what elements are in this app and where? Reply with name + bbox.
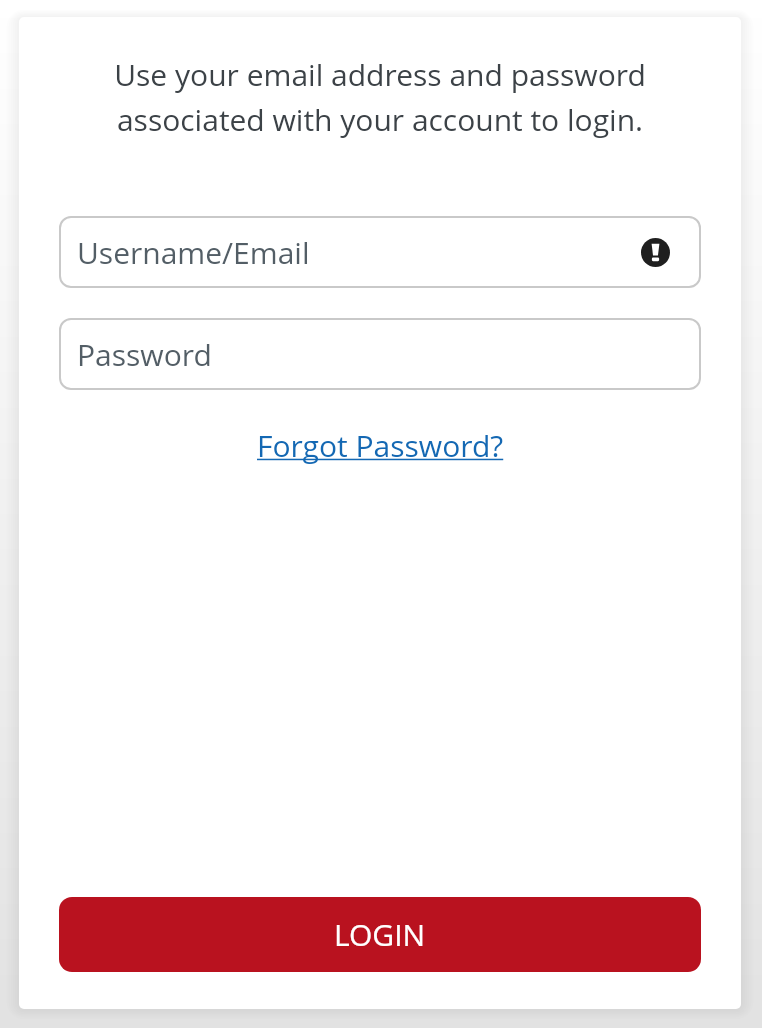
- button[interactable]: LOGIN: [59, 897, 701, 972]
- staticText: Password: [77, 334, 212, 375]
- button[interactable]: Forgot Password?: [257, 425, 504, 466]
- staticText: Use your email address and password asso…: [59, 54, 701, 139]
- button[interactable]: Password: [59, 318, 701, 390]
- staticText: Username/Email: [77, 232, 641, 273]
- button[interactable]: Username/Email: [59, 216, 701, 288]
- staticText: LOGIN: [334, 914, 426, 955]
